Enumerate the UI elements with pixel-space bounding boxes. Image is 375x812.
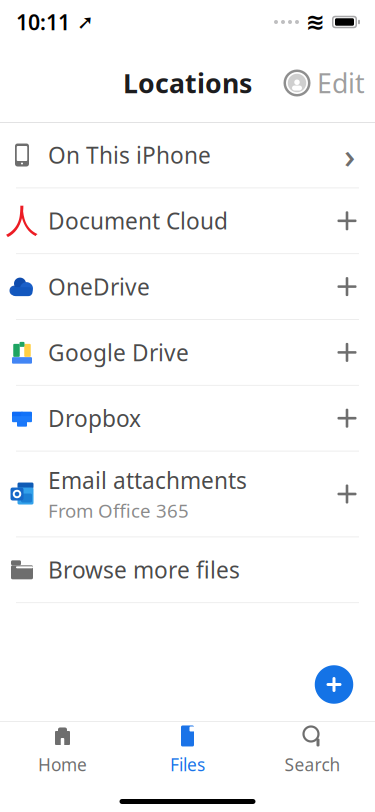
staticText: From Office 365 — [48, 498, 189, 523]
staticText: Dropbox — [48, 403, 141, 433]
button[interactable]: Browse more files — [0, 537, 375, 602]
staticText: Home — [38, 753, 87, 776]
button[interactable]: Files — [125, 722, 250, 778]
button[interactable]: Search — [250, 722, 375, 778]
staticText: › — [344, 132, 355, 178]
button[interactable]: OneDrive — [0, 254, 375, 319]
staticText: Email attachments — [48, 465, 247, 495]
button[interactable]: Google Drive — [0, 320, 375, 385]
staticText: Locations — [123, 65, 252, 101]
staticText: Search — [284, 753, 340, 776]
button[interactable]: Edit — [317, 63, 365, 103]
staticText: ➚ — [70, 11, 94, 33]
staticText: Google Drive — [48, 337, 189, 367]
staticText: 人 — [5, 200, 38, 241]
button[interactable]: Email attachments — [0, 451, 375, 536]
button[interactable]: On This iPhone — [0, 122, 375, 187]
staticText: OneDrive — [48, 271, 150, 302]
staticText: 10:11 — [16, 8, 70, 36]
staticText: Files — [170, 753, 205, 776]
staticText: On This iPhone — [48, 140, 211, 170]
button[interactable]: Account — [277, 63, 317, 103]
staticText: Browse more files — [48, 555, 240, 585]
staticText: Edit — [317, 65, 365, 101]
button[interactable]: Create — [311, 661, 357, 707]
button[interactable]: Home — [0, 722, 125, 778]
staticText: Document Cloud — [48, 206, 228, 236]
button[interactable]: 人 — [0, 188, 375, 253]
staticText: ≋ — [306, 9, 325, 35]
button[interactable]: Dropbox — [0, 386, 375, 451]
